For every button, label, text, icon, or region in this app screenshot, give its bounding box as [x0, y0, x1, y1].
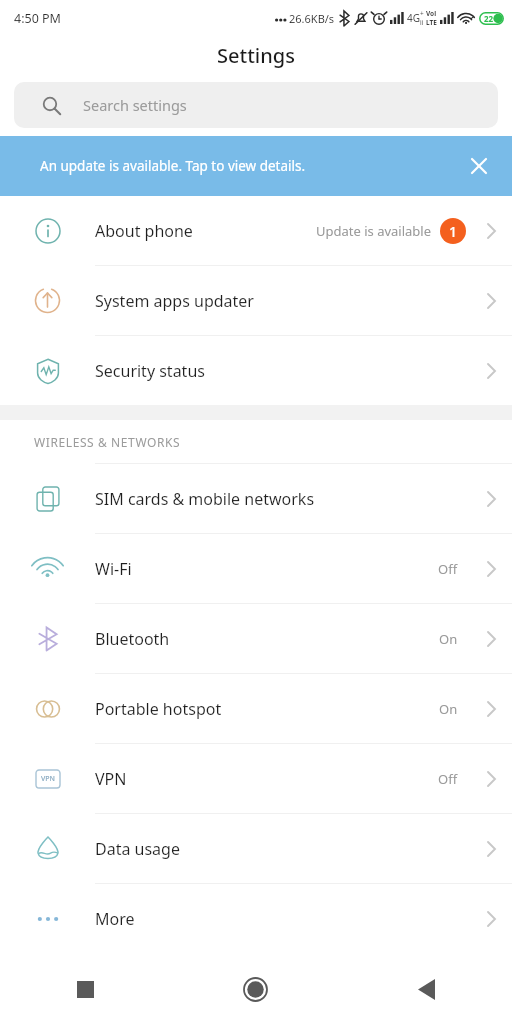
button[interactable]: System apps updater — [0, 266, 512, 335]
staticText: System apps updater — [95, 290, 458, 312]
staticText: 4G — [407, 11, 420, 25]
staticText: SIM cards & mobile networks — [95, 488, 458, 510]
staticText: Data usage — [95, 838, 458, 860]
staticText: Vol — [426, 9, 437, 18]
staticText: LTE — [426, 18, 437, 27]
button[interactable]: More — [0, 884, 512, 953]
button[interactable]: Wi-Fi — [0, 534, 512, 603]
staticText: WIRELESS & NETWORKS — [34, 434, 181, 450]
button[interactable]: Data usage — [0, 814, 512, 883]
staticText: VPN — [95, 768, 438, 790]
staticText: + — [420, 9, 424, 18]
button[interactable]: Recent apps — [0, 955, 170, 1024]
staticText: Security status — [95, 360, 458, 382]
staticText: On — [439, 630, 458, 648]
button[interactable]: About phone — [0, 196, 512, 265]
button[interactable]: SIM cards & mobile networks — [0, 464, 512, 533]
button[interactable]: An update is available. Tap to view deta… — [0, 136, 512, 196]
staticText: Portable hotspot — [95, 698, 439, 720]
staticText: On — [439, 700, 458, 718]
button[interactable]: Home — [170, 955, 341, 1024]
staticText: Wi-Fi — [95, 558, 438, 580]
staticText: Search settings — [83, 95, 187, 115]
button[interactable]: Bluetooth — [0, 604, 512, 673]
staticText: 26.6KB/s — [289, 11, 335, 26]
button[interactable]: VPN — [0, 744, 512, 813]
staticText: VPN — [41, 774, 56, 784]
button[interactable]: Dismiss update notice — [464, 151, 494, 181]
staticText: 22 — [484, 13, 494, 24]
staticText: An update is available. Tap to view deta… — [40, 157, 464, 175]
staticText: Update is available — [316, 222, 432, 240]
staticText: More — [95, 908, 458, 930]
button[interactable]: Portable hotspot — [0, 674, 512, 743]
staticText: Bluetooth — [95, 628, 439, 650]
staticText: About phone — [95, 220, 316, 242]
button[interactable]: Search settings — [14, 82, 498, 128]
staticText: ii — [420, 18, 424, 27]
button[interactable]: Security status — [0, 336, 512, 405]
staticText: 1 — [449, 222, 458, 241]
button[interactable]: Back — [341, 955, 512, 1024]
staticText: Off — [438, 770, 458, 788]
staticText: 4:50 PM — [14, 10, 61, 27]
staticText: Off — [438, 560, 458, 578]
staticText: Settings — [217, 42, 295, 69]
